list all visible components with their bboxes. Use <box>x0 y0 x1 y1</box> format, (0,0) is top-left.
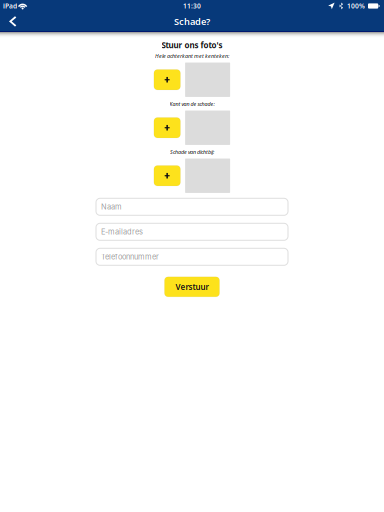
button[interactable]: Voeg foto toe: Hele achterkant met kente… <box>154 69 180 90</box>
staticText: Schade? <box>174 15 210 28</box>
button[interactable]: E-mailadres <box>96 223 288 240</box>
button[interactable]: Voeg foto toe: Kant van de schade: <box>154 117 180 138</box>
staticText: Hele achterkant met kenteken: <box>155 52 229 60</box>
staticText: Naam <box>101 202 122 211</box>
staticText: 11:30 <box>183 2 201 10</box>
staticText: Stuur ons foto's <box>161 40 222 50</box>
staticText: Verstuur <box>175 281 208 292</box>
staticText: Schade van dichtbij: <box>170 148 214 156</box>
button[interactable]: Telefoonnummer <box>96 248 288 265</box>
staticText: iPad <box>3 2 17 10</box>
staticText: Telefoonnummer <box>101 252 159 261</box>
button[interactable]: Naam <box>96 198 288 215</box>
staticText: 100% <box>347 2 365 10</box>
button[interactable]: Terug <box>0 13 28 30</box>
staticText: Kant van de schade: <box>169 100 214 108</box>
button[interactable]: Voeg foto toe: Schade van dichtbij: <box>154 165 180 186</box>
staticText: E-mailadres <box>101 227 143 236</box>
button[interactable]: Verstuur <box>164 277 219 297</box>
